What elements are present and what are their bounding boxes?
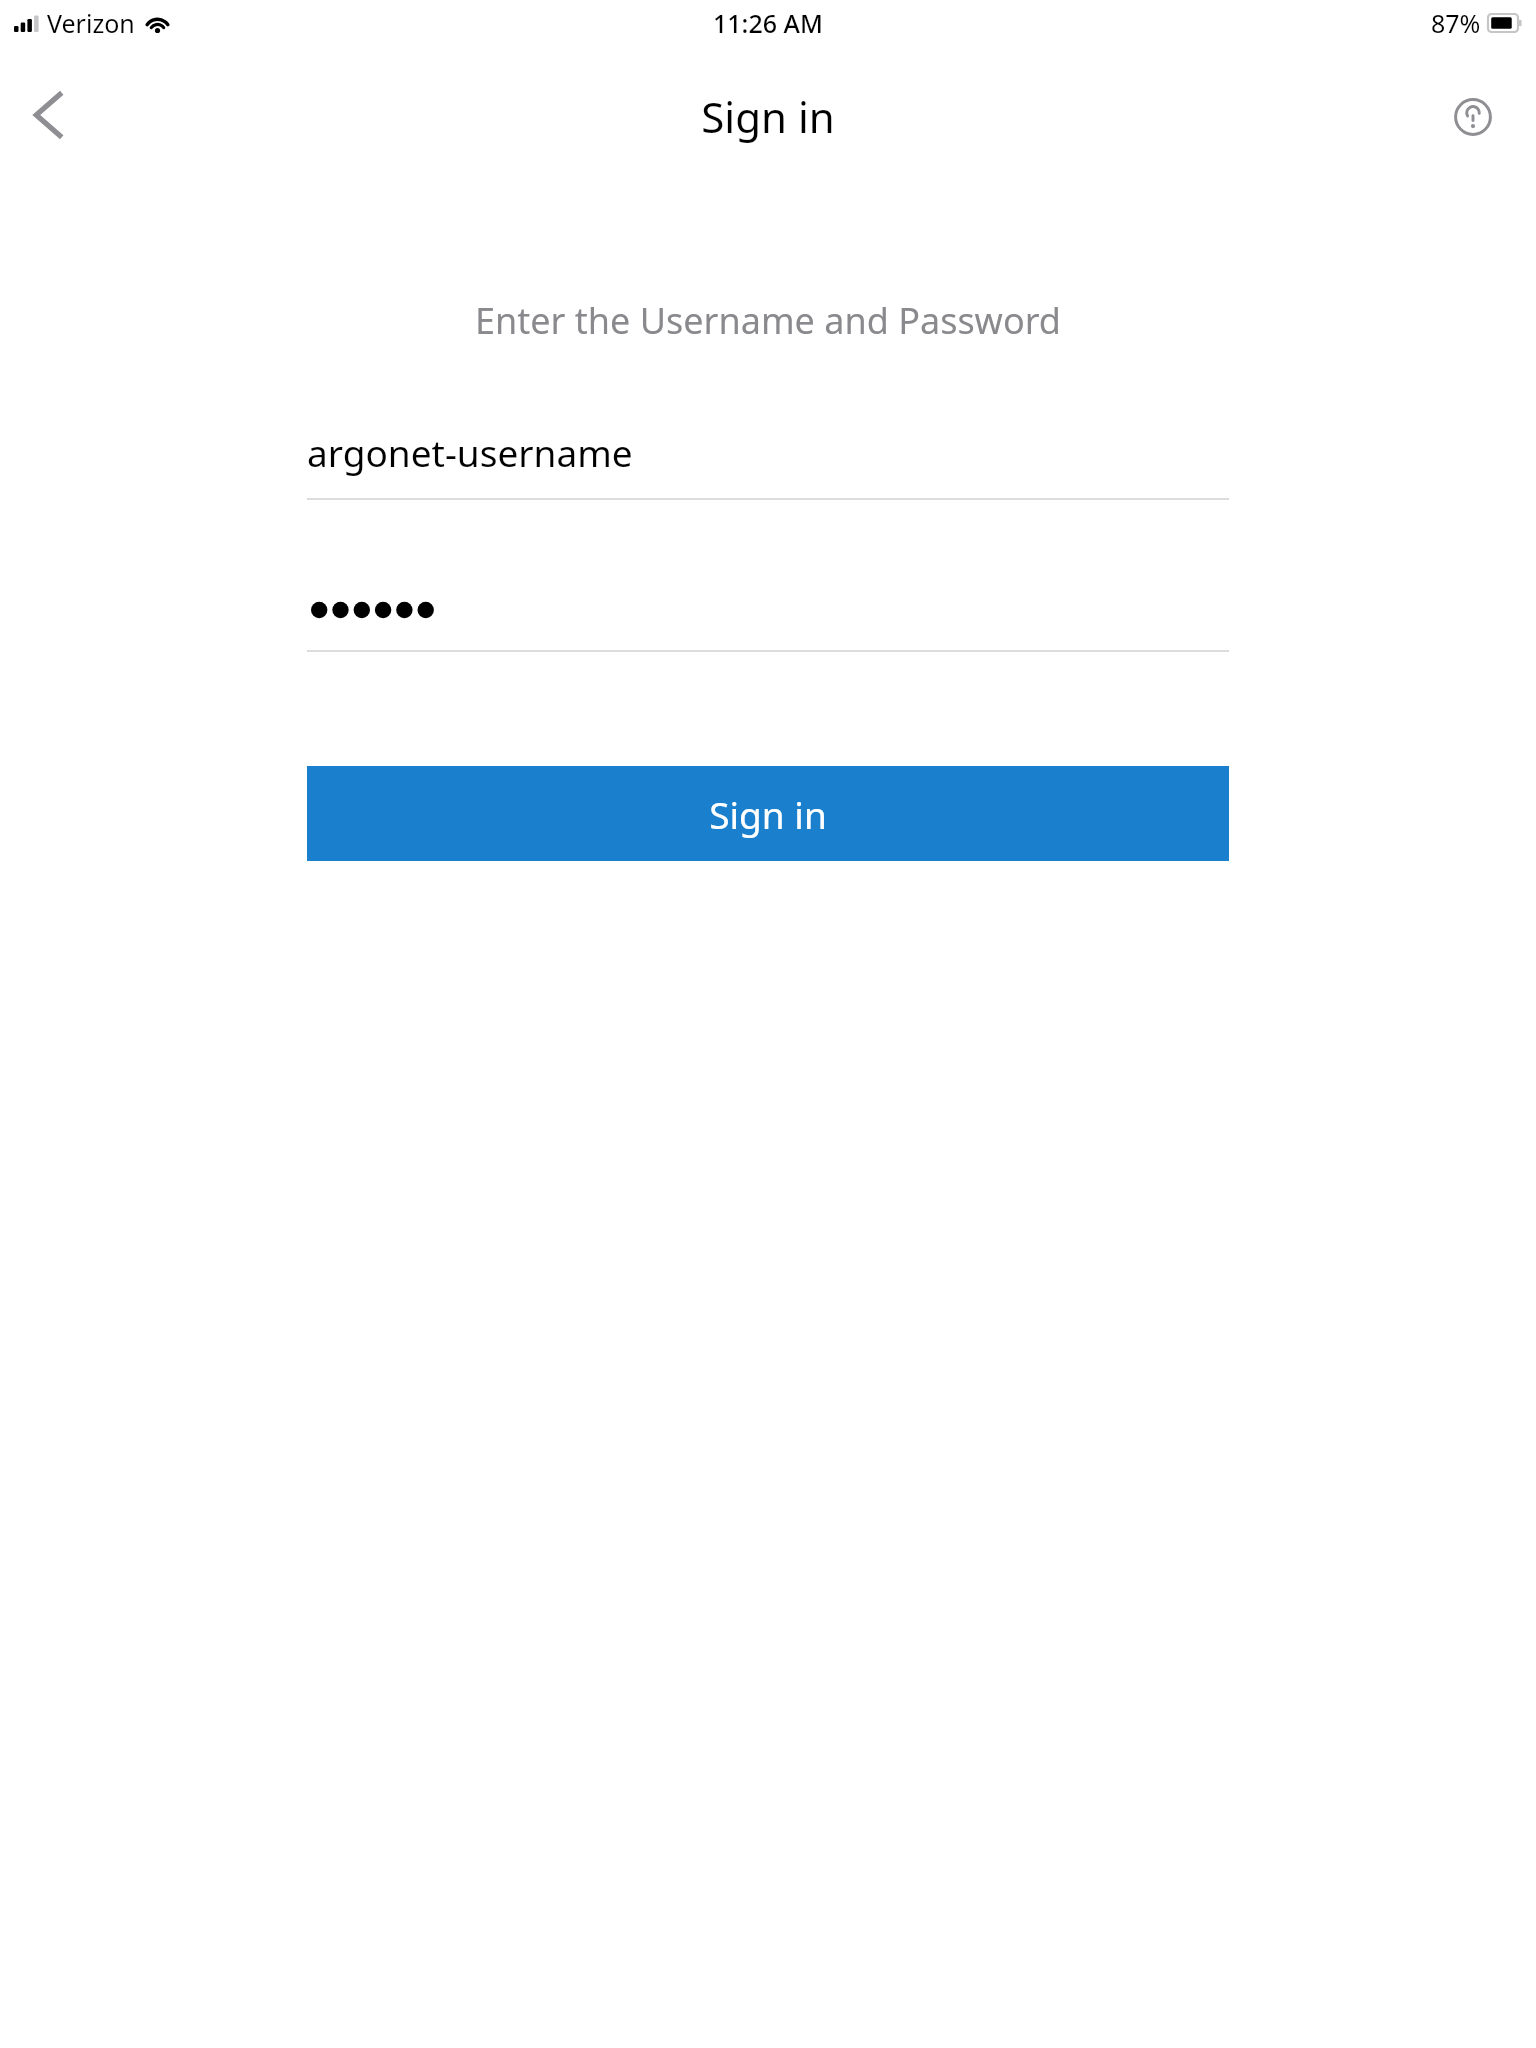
button[interactable]: Password — [307, 592, 1229, 652]
staticText: 11:26 AM — [713, 6, 823, 40]
button[interactable]: Sign in — [307, 766, 1229, 861]
button[interactable]: argonet-username — [307, 427, 1229, 500]
button[interactable]: Back — [8, 75, 88, 155]
button[interactable]: Help — [1433, 77, 1513, 157]
staticText: Sign in — [701, 88, 835, 145]
staticText: Verizon — [47, 6, 135, 40]
staticText: argonet-username — [307, 427, 633, 477]
staticText: Enter the Username and Password — [0, 296, 1536, 345]
staticText: Sign in — [709, 789, 827, 839]
staticText: 87% — [1431, 6, 1481, 40]
